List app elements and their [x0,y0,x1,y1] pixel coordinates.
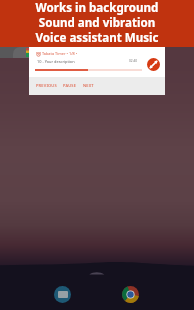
staticText: 02:40 [129,59,138,63]
staticText: PAUSE [63,83,77,88]
button[interactable]: PREVIOUS [33,82,60,89]
staticText: Works in background Sound and vibration … [0,0,194,46]
button[interactable]: Chrome [122,286,139,303]
staticText: 10 - Your description [37,59,75,64]
button[interactable]: Files [54,286,71,303]
button[interactable]: Expand timer [147,58,160,71]
staticText: Tabata Timer • 1/8 • [42,51,78,56]
staticText: PREVIOUS [36,83,57,88]
staticText: NEXT [83,83,94,88]
button[interactable]: PAUSE [60,82,80,89]
button[interactable]: NEXT [80,82,97,89]
